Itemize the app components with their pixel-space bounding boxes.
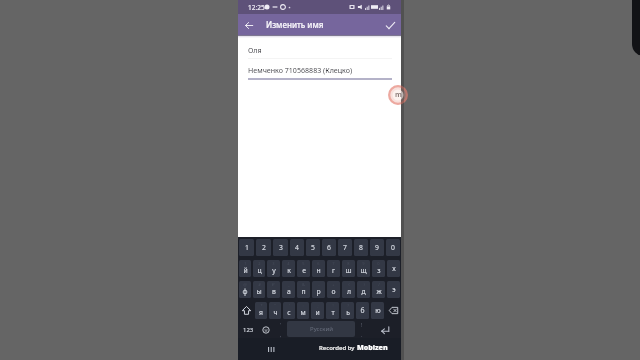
button[interactable]: ;: [311, 302, 324, 319]
staticText: м: [300, 308, 306, 317]
button[interactable]: (: [342, 281, 355, 298]
button[interactable]: Save: [382, 17, 398, 33]
staticText: 9: [375, 243, 379, 252]
staticText: 8: [347, 261, 350, 266]
button[interactable]: Back: [241, 17, 257, 33]
staticText: !: [361, 322, 363, 329]
button[interactable]: ": [269, 302, 281, 319]
button[interactable]: &: [297, 281, 310, 298]
button[interactable]: 8: [342, 260, 355, 277]
staticText: Немченко 710568883 (Клецко): [248, 65, 353, 75]
button[interactable]: 9: [370, 239, 384, 256]
button[interactable]: 0: [372, 260, 385, 277]
button[interactable]: 4: [290, 239, 304, 256]
button[interactable]: !: [326, 302, 339, 319]
button[interactable]: Emoji: [258, 321, 274, 338]
staticText: ь: [346, 308, 350, 317]
button[interactable]: !: [355, 321, 368, 338]
staticText: щ: [360, 266, 367, 275]
staticText: р: [316, 287, 321, 296]
button[interactable]: /: [372, 281, 385, 298]
button[interactable]: 2: [256, 239, 271, 256]
button[interactable]: 8: [354, 239, 368, 256]
staticText: х: [392, 264, 396, 273]
staticText: Recorded by: [319, 344, 357, 352]
button[interactable]: Backspace: [385, 300, 401, 321]
staticText: 123: [243, 326, 254, 334]
staticText: 2: [262, 243, 266, 252]
button[interactable]: 9: [357, 260, 370, 277]
staticText: с: [287, 308, 291, 317]
button[interactable]: б: [356, 302, 369, 319]
staticText: ы: [256, 287, 262, 296]
staticText: а: [287, 287, 291, 296]
button[interactable]: Русский: [287, 321, 355, 337]
button[interactable]: ): [357, 281, 370, 298]
button[interactable]: 1: [239, 260, 251, 277]
staticText: 3: [279, 243, 283, 252]
button[interactable]: *: [255, 302, 267, 319]
button[interactable]: 6: [322, 239, 336, 256]
button[interactable]: 4: [282, 260, 295, 277]
staticText: 4: [295, 243, 299, 252]
button[interactable]: _: [282, 281, 295, 298]
button[interactable]: #: [253, 281, 265, 298]
button[interactable]: 3: [273, 239, 288, 256]
staticText: е: [302, 266, 306, 275]
button[interactable]: +: [327, 281, 340, 298]
button[interactable]: Enter: [368, 321, 401, 338]
staticText: 4: [287, 261, 290, 266]
staticText: 1: [245, 243, 249, 252]
button[interactable]: 7: [338, 239, 352, 256]
button[interactable]: 2: [253, 260, 265, 277]
button[interactable]: 6: [312, 260, 325, 277]
button[interactable]: 0: [386, 239, 400, 256]
button[interactable]: @: [239, 281, 251, 298]
button[interactable]: э: [387, 281, 400, 298]
button[interactable]: Recents: [267, 345, 276, 354]
button[interactable]: ₽: [267, 281, 280, 298]
button[interactable]: х: [387, 260, 400, 277]
staticText: н: [316, 266, 321, 275]
staticText: к: [287, 266, 291, 275]
staticText: ж: [376, 287, 382, 296]
staticText: з: [377, 266, 381, 275]
button[interactable]: -: [312, 281, 325, 298]
button[interactable]: ю: [371, 302, 384, 319]
staticText: 8: [359, 243, 363, 252]
button[interactable]: ?: [341, 302, 354, 319]
staticText: 0: [391, 243, 395, 252]
button[interactable]: ': [274, 321, 287, 338]
staticText: д: [361, 287, 366, 296]
staticText: й: [243, 266, 248, 275]
button[interactable]: 3: [267, 260, 280, 277]
staticText: 6: [327, 243, 331, 252]
staticText: ю: [375, 306, 381, 315]
button[interactable]: 123: [238, 321, 258, 338]
button[interactable]: ': [283, 302, 295, 319]
button[interactable]: 1: [239, 239, 254, 256]
button[interactable]: 7: [327, 260, 340, 277]
staticText: ф: [242, 287, 248, 296]
staticText: 1: [244, 261, 247, 266]
button[interactable]: 5: [306, 239, 320, 256]
staticText: б: [360, 306, 365, 315]
button[interactable]: Shift: [238, 300, 254, 321]
button[interactable]: :: [297, 302, 309, 319]
staticText: ш: [345, 266, 352, 275]
button[interactable]: 5: [297, 260, 310, 277]
staticText: &: [302, 282, 305, 287]
staticText: л: [347, 287, 351, 296]
